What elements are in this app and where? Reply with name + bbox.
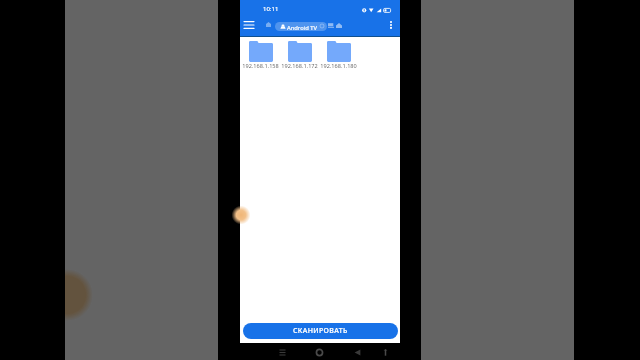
button[interactable]: СКАНИРОВАТЬ xyxy=(243,323,398,339)
staticText: Android TV xyxy=(287,24,317,31)
staticText: 192.168.1.158 xyxy=(242,62,279,70)
staticText: 192.168.1.172 xyxy=(281,62,318,70)
button[interactable]: Android TV xyxy=(275,22,327,31)
button[interactable]: Cast xyxy=(326,21,336,29)
button[interactable]: Home xyxy=(265,21,271,27)
button[interactable]: 192.168.1.180 xyxy=(319,39,358,70)
button[interactable]: Home folder xyxy=(334,21,344,29)
staticText: 10:11 xyxy=(263,5,279,13)
button[interactable]: Back xyxy=(350,345,365,360)
button[interactable]: 192.168.1.158 xyxy=(241,39,280,70)
button[interactable]: Recents xyxy=(275,345,290,360)
staticText: 192.168.1.180 xyxy=(320,62,357,70)
button[interactable]: Open navigation drawer xyxy=(240,16,257,33)
button[interactable]: Home xyxy=(312,345,327,360)
button[interactable]: Hide keyboard xyxy=(378,345,393,360)
button[interactable]: More options xyxy=(383,17,399,33)
staticText: СКАНИРОВАТЬ xyxy=(293,326,348,336)
button[interactable]: 192.168.1.172 xyxy=(280,39,319,70)
